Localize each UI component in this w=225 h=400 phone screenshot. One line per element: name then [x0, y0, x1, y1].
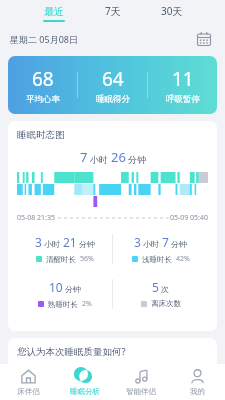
- staticText: 星期二 05月08日: [10, 33, 78, 45]
- staticText: 10: [49, 279, 63, 295]
- staticText: 7天: [105, 4, 121, 18]
- button[interactable]: 7天: [102, 2, 124, 24]
- button[interactable]: 3: [17, 234, 112, 264]
- staticText: 离床次数: [151, 299, 181, 308]
- staticText: 最近: [44, 5, 64, 18]
- staticText: 我的: [190, 387, 205, 396]
- staticText: 21: [63, 234, 77, 250]
- staticText: 05-09 05:40: [170, 213, 208, 223]
- staticText: 3: [35, 234, 42, 250]
- staticText: 您认为本次睡眠质量如何?: [17, 345, 126, 358]
- staticText: 68: [32, 66, 54, 92]
- button[interactable]: 最近: [40, 3, 68, 24]
- staticText: 睡眠时态图: [17, 129, 65, 141]
- staticText: 床伴侣: [17, 387, 40, 396]
- staticText: 2%: [82, 299, 92, 309]
- staticText: 分钟: [79, 239, 95, 249]
- button[interactable]: 睡眠分析: [57, 364, 113, 400]
- staticText: 清醒时长: [46, 255, 76, 264]
- staticText: 3: [134, 234, 141, 250]
- staticText: 5: [152, 279, 159, 295]
- button[interactable]: 10: [17, 279, 112, 309]
- button[interactable]: 我的: [169, 364, 225, 400]
- button[interactable]: Calendar: [193, 28, 215, 50]
- staticText: 熟睡时长: [48, 300, 78, 309]
- staticText: 睡眠得分: [96, 94, 130, 105]
- staticText: 30天: [161, 4, 183, 18]
- staticText: 7: [80, 148, 88, 166]
- staticText: 浅睡时长: [142, 255, 172, 264]
- button[interactable]: 30天: [158, 2, 186, 24]
- staticText: 05-08 21:35: [17, 213, 55, 223]
- staticText: 26: [111, 148, 126, 166]
- button[interactable]: 5: [113, 279, 208, 308]
- staticText: 睡眠分析: [70, 387, 100, 396]
- staticText: 11: [172, 66, 194, 92]
- staticText: 呼吸暂停: [166, 94, 200, 105]
- staticText: 小时: [90, 154, 108, 165]
- button[interactable]: 床伴侣: [0, 364, 57, 400]
- staticText: 分钟: [171, 239, 187, 249]
- button[interactable]: 68: [8, 56, 217, 114]
- staticText: 64: [102, 66, 124, 92]
- button[interactable]: 智能伴侣: [113, 364, 169, 400]
- button[interactable]: 3: [113, 234, 208, 264]
- staticText: 小时: [143, 239, 159, 249]
- staticText: 次: [161, 284, 169, 294]
- button[interactable]: 您认为本次睡眠质量如何?: [8, 338, 217, 364]
- staticText: 7: [162, 234, 169, 250]
- staticText: 分钟: [65, 284, 81, 294]
- staticText: 小时: [44, 239, 60, 249]
- staticText: 智能伴侣: [126, 387, 156, 396]
- staticText: 平均心率: [26, 94, 60, 105]
- staticText: 56%: [80, 254, 94, 264]
- staticText: 42%: [176, 254, 190, 264]
- staticText: 分钟: [128, 154, 146, 165]
